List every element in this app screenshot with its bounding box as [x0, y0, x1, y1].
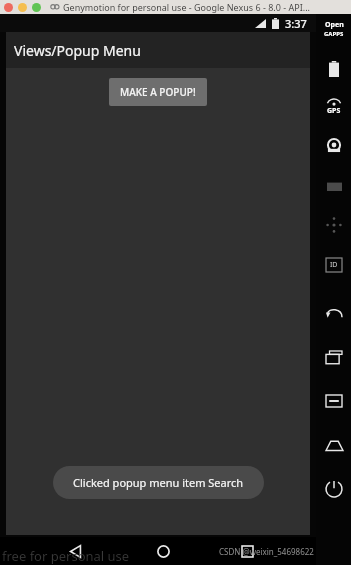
staticText: CSDN @weixin_54698622 [219, 546, 314, 557]
button[interactable]: Home [319, 434, 349, 456]
staticText: Open [325, 20, 344, 30]
button[interactable]: Back [62, 538, 88, 564]
staticText: Genymotion for personal use - Google Nex… [63, 1, 310, 13]
button[interactable]: Recents [319, 346, 349, 368]
staticText: ID [330, 260, 338, 270]
button[interactable]: GPS [319, 96, 349, 118]
button[interactable]: Video [319, 174, 349, 196]
staticText: GAPPS [324, 30, 344, 38]
button[interactable]: Home [150, 538, 176, 564]
staticText: GPS [327, 106, 341, 116]
button[interactable]: Camera [319, 134, 349, 156]
staticText: free for personal use [2, 547, 130, 565]
button[interactable]: Menu [319, 390, 349, 412]
staticText: 3:37 [285, 16, 307, 31]
button[interactable]: Recents [234, 538, 260, 564]
button[interactable]: Back [319, 302, 349, 324]
button[interactable]: ID [319, 254, 349, 276]
button[interactable]: MAKE A POPUP! [109, 78, 207, 106]
button[interactable]: Battery [319, 58, 349, 80]
button[interactable]: D-pad [319, 214, 349, 236]
staticText: MAKE A POPUP! [120, 85, 196, 99]
button[interactable]: Power [319, 478, 349, 500]
staticText: Views/Popup Menu [14, 41, 141, 60]
staticText: Clicked popup menu item Search [73, 475, 244, 490]
